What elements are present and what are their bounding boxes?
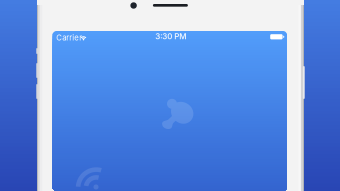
staticText: Carrier [56,33,82,42]
staticText: 3:30 PM [155,31,186,41]
